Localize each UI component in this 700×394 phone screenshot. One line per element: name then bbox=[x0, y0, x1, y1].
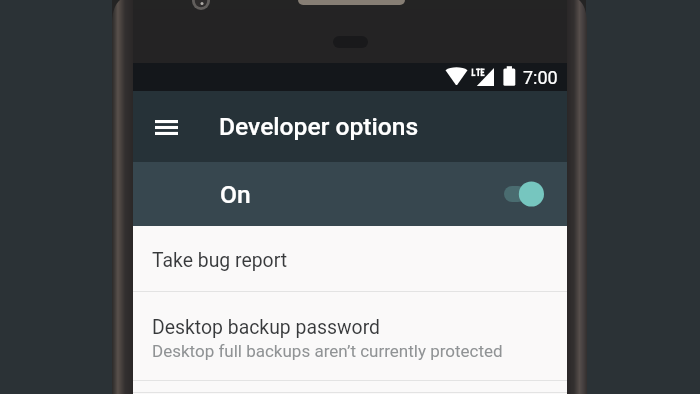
button[interactable]: Desktop backup password bbox=[133, 292, 567, 380]
button[interactable]: On bbox=[133, 162, 567, 226]
staticText: Desktop backup password bbox=[152, 316, 380, 339]
staticText: Take bug report bbox=[152, 249, 288, 272]
staticText: Desktop full backups aren’t currently pr… bbox=[152, 341, 503, 361]
button[interactable]: Take bug report bbox=[133, 226, 567, 291]
staticText: On bbox=[220, 180, 251, 209]
staticText: Developer options bbox=[219, 112, 419, 141]
staticText: 7:00 bbox=[523, 67, 558, 88]
button[interactable]: Open navigation menu bbox=[138, 99, 194, 155]
